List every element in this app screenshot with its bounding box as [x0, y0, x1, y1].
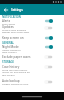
button[interactable]: Back: [3, 7, 9, 13]
staticText: Weekly backup to your cloud: [2, 82, 29, 85]
staticText: Exclude paper cases: [2, 55, 31, 59]
staticText: Auto backup: [2, 79, 20, 83]
staticText: Settings: [11, 8, 23, 12]
staticText: GENERAL: [2, 41, 14, 45]
button[interactable]: Toggle on: [43, 43, 54, 51]
button[interactable]: Toggle off: [43, 63, 54, 71]
staticText: Push alerts: [2, 22, 16, 25]
staticText: Adjust theme to dark colours: [2, 48, 23, 54]
staticText: STORAGE: [2, 60, 14, 64]
staticText: Keep screen on: [2, 36, 24, 40]
staticText: Updates: [2, 25, 14, 29]
button[interactable]: Toggle off: [43, 78, 54, 86]
staticText: Case history: [2, 65, 20, 69]
staticText: Show a mini floating widget over other a…: [2, 28, 30, 34]
staticText: NOTIFICATION: [2, 15, 21, 19]
button[interactable]: Toggle off: [43, 24, 54, 32]
button[interactable]: Toggle off: [43, 53, 54, 61]
staticText: Alerts: [2, 19, 11, 23]
button[interactable]: Toggle on: [43, 17, 54, 25]
button[interactable]: Toggle on: [43, 34, 54, 42]
staticText: Store the case history locally on this d…: [2, 68, 31, 77]
staticText: Night Mode: [2, 45, 19, 49]
